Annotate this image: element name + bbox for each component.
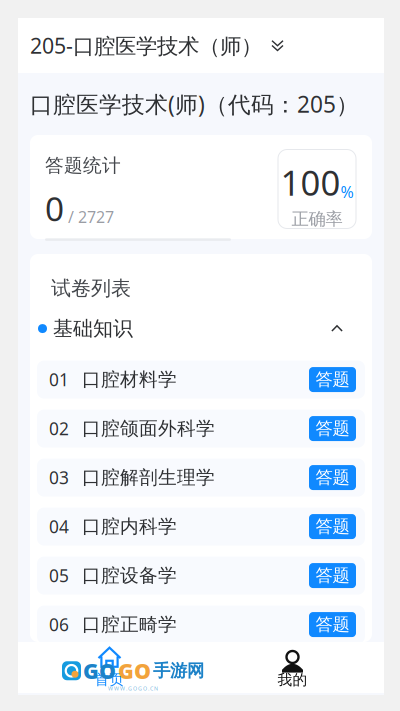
staticText: 口腔颌面外科学 [82, 417, 215, 440]
staticText: % [340, 181, 353, 202]
staticText: 口腔正畸学 [82, 613, 177, 636]
staticText: 04 [49, 515, 69, 538]
staticText: 答题 [315, 565, 349, 586]
button[interactable]: 01 [37, 361, 365, 399]
staticText: 答题 [315, 516, 349, 537]
button[interactable]: 04 [37, 508, 365, 546]
staticText: 口腔材料学 [82, 368, 177, 391]
staticText: 100 [280, 159, 340, 205]
staticText: 手游网 [153, 660, 204, 681]
button[interactable]: 答题 [309, 563, 356, 588]
staticText: / 2727 [68, 206, 114, 227]
staticText: 答题统计 [45, 154, 121, 177]
staticText: GO [83, 657, 116, 685]
staticText: GO [118, 657, 151, 685]
button[interactable]: 205-口腔医学技术（师） [18, 18, 384, 73]
staticText: 试卷列表 [51, 276, 131, 301]
button[interactable]: 答题 [309, 612, 356, 637]
button[interactable]: 我的 [201, 642, 384, 693]
staticText: 02 [49, 417, 69, 440]
button[interactable]: 答题 [309, 367, 356, 392]
staticText: 我的 [277, 671, 307, 689]
button[interactable]: 02 [37, 410, 365, 448]
staticText: 01 [49, 368, 69, 391]
staticText: 基础知识 [53, 316, 133, 341]
button[interactable]: 答题 [309, 465, 356, 490]
staticText: 05 [49, 564, 69, 587]
button[interactable]: 06 [37, 606, 365, 644]
staticText: 答题 [315, 614, 349, 635]
staticText: 答题 [315, 418, 349, 439]
staticText: W W W . G O G O . C N [108, 685, 158, 692]
staticText: 205-口腔医学技术（师） [30, 31, 262, 60]
staticText: 答题 [315, 467, 349, 488]
button[interactable]: 05 [37, 557, 365, 595]
staticText: 口腔设备学 [82, 564, 177, 587]
staticText: 0 [45, 186, 64, 230]
staticText: 口腔内科学 [82, 515, 177, 538]
button[interactable]: 首页 [18, 642, 201, 693]
staticText: 03 [49, 466, 69, 489]
button[interactable]: 03 [37, 459, 365, 497]
staticText: 首页 [94, 670, 124, 688]
button[interactable]: 答题 [309, 416, 356, 441]
button[interactable]: 答题 [309, 514, 356, 539]
staticText: 答题 [315, 369, 349, 390]
button[interactable]: 基础知识 [30, 318, 372, 340]
staticText: 06 [49, 613, 69, 636]
staticText: 正确率 [291, 208, 342, 230]
staticText: 口腔解剖生理学 [82, 466, 215, 489]
staticText: 口腔医学技术(师)（代码：205） [30, 89, 359, 119]
